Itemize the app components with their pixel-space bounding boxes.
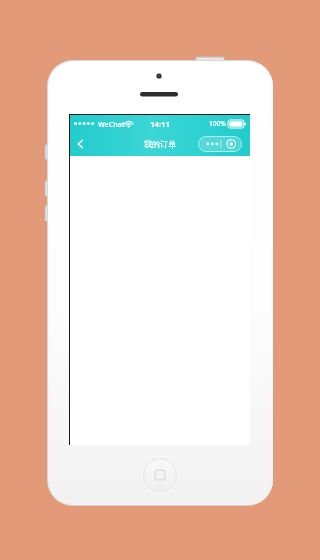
staticText: WeChat bbox=[98, 119, 125, 129]
button[interactable]: Menu bbox=[198, 136, 242, 152]
staticText: 我的订单 bbox=[130, 139, 190, 151]
button[interactable]: Back bbox=[71, 134, 91, 154]
staticText: 100% bbox=[209, 119, 226, 128]
button[interactable]: Home bbox=[143, 458, 177, 492]
staticText: 14:11 bbox=[148, 119, 172, 130]
